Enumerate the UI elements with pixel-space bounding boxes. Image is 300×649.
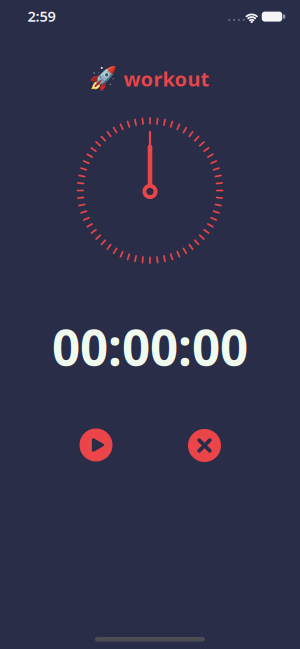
- button[interactable]: Cancel: [188, 429, 221, 462]
- staticText: 2:59: [27, 6, 55, 26]
- button[interactable]: Start: [79, 428, 112, 461]
- staticText: workout: [123, 65, 209, 92]
- staticText: 🚀: [88, 65, 116, 92]
- staticText: 00:00:00: [52, 314, 248, 379]
